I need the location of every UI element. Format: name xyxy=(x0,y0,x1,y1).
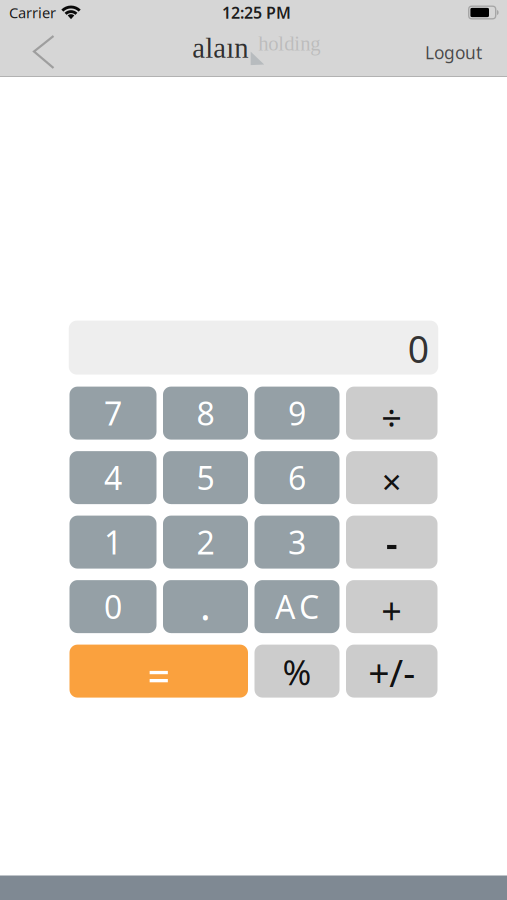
button[interactable]: +/- xyxy=(346,645,437,698)
button[interactable]: ÷ xyxy=(346,387,437,440)
button[interactable] xyxy=(69,645,248,698)
button[interactable]: 0 xyxy=(69,580,156,633)
staticText: 3 xyxy=(288,521,306,563)
button[interactable]: . xyxy=(163,580,248,633)
staticText: 4 xyxy=(104,456,122,499)
staticText: 7 xyxy=(104,392,122,434)
staticText: Logout xyxy=(425,41,482,64)
button[interactable]: Logout xyxy=(425,38,507,64)
button[interactable]: 8 xyxy=(163,387,248,440)
button[interactable]: 1 xyxy=(69,516,156,569)
button[interactable] xyxy=(0,33,75,69)
staticText: ÷ xyxy=(381,393,402,441)
staticText: 8 xyxy=(196,392,214,434)
staticText: +/- xyxy=(368,648,415,697)
button[interactable] xyxy=(346,516,437,569)
staticText: + xyxy=(381,586,402,634)
staticText: 6 xyxy=(288,456,306,499)
button[interactable]: 6 xyxy=(254,451,339,504)
button[interactable]: 3 xyxy=(254,516,339,569)
staticText: 0 xyxy=(104,585,122,628)
staticText: 0 xyxy=(408,324,429,373)
staticText: Carrier xyxy=(9,3,56,22)
button[interactable]: × xyxy=(346,451,437,504)
button[interactable]: 9 xyxy=(254,387,339,440)
staticText: 2 xyxy=(196,521,214,563)
button[interactable]: AC xyxy=(254,580,339,633)
button[interactable]: 2 xyxy=(163,516,248,569)
button[interactable]: 4 xyxy=(69,451,156,504)
button[interactable]: + xyxy=(346,580,437,633)
staticText: 1 xyxy=(104,521,122,563)
staticText: % xyxy=(282,649,311,695)
staticText: holding xyxy=(258,32,320,55)
button[interactable]: 7 xyxy=(69,387,156,440)
staticText: × xyxy=(382,458,402,504)
staticText: AC xyxy=(275,585,319,628)
button[interactable]: 5 xyxy=(163,451,248,504)
staticText: 5 xyxy=(196,456,214,499)
button[interactable]: % xyxy=(254,645,339,698)
staticText: 9 xyxy=(288,392,306,434)
staticText: . xyxy=(200,578,211,632)
staticText: 12:25 PM xyxy=(222,2,291,23)
staticText: alaın xyxy=(192,32,248,64)
